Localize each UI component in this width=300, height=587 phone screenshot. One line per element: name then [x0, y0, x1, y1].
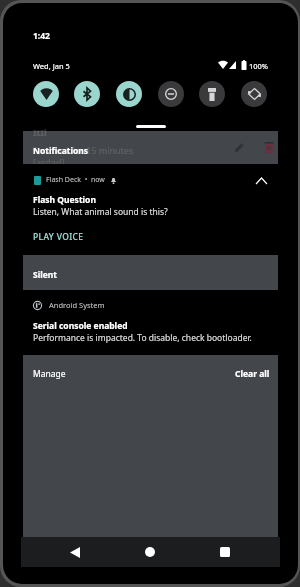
staticText: 1:42 — [33, 30, 50, 42]
button[interactable]: Back — [55, 537, 95, 567]
button[interactable]: Collapse notification — [252, 172, 270, 190]
staticText: ItIl — [33, 126, 47, 138]
staticText: Notifications — [33, 145, 89, 157]
staticText: Silent — [33, 269, 58, 281]
staticText: Performance is impacted. To disable, che… — [33, 332, 252, 344]
button[interactable] — [31, 229, 87, 245]
button[interactable] — [23, 164, 278, 255]
staticText: Wed, Jan 5 — [33, 61, 70, 71]
button[interactable]: Clear notifications — [260, 138, 278, 156]
staticText: PLAY VOICE — [33, 231, 84, 243]
staticText: Manage — [33, 368, 66, 380]
staticText: [asdad] — [33, 156, 65, 168]
button[interactable]: Do not disturb — [158, 81, 184, 107]
button[interactable] — [230, 363, 274, 385]
staticText: Android System — [49, 300, 105, 310]
staticText: Flash Question — [33, 194, 96, 206]
button[interactable]: Flashlight — [199, 81, 225, 107]
staticText: Snoozed for 15 minutes — [33, 144, 134, 156]
staticText: 100% — [249, 61, 269, 71]
button[interactable] — [23, 131, 203, 165]
staticText: Serial console enabled — [33, 320, 128, 332]
button[interactable]: Internet — [33, 81, 59, 107]
button[interactable]: Home — [130, 537, 170, 567]
button[interactable]: Dark theme — [116, 81, 142, 107]
button[interactable] — [23, 256, 278, 290]
button[interactable]: Recent apps — [205, 537, 245, 567]
button[interactable]: Bluetooth — [74, 81, 100, 107]
staticText: Listen, What animal sound is this? — [33, 206, 168, 218]
button[interactable] — [23, 363, 83, 385]
staticText: Flash Deck • now — [46, 175, 105, 185]
staticText: Clear all — [235, 368, 270, 380]
button[interactable] — [23, 290, 278, 355]
button[interactable]: Edit notifications — [230, 138, 248, 156]
button[interactable]: Auto-rotate — [241, 81, 267, 107]
